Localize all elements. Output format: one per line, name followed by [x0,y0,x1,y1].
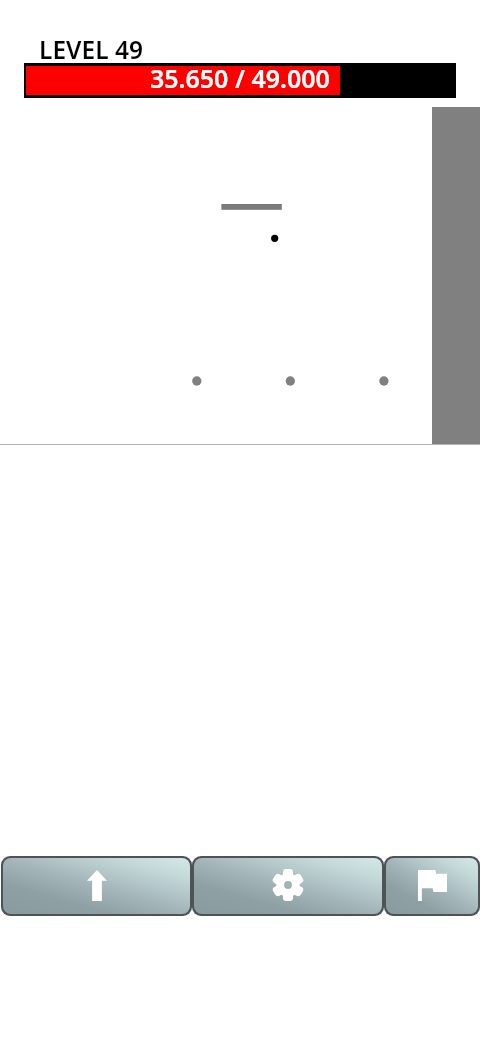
button[interactable]: Flag [386,858,478,914]
staticText: 35.650 / 49.000 [150,61,330,95]
staticText: LEVEL 49 [39,33,143,66]
button[interactable]: Launch ball [3,858,190,914]
button[interactable]: Settings [194,858,382,914]
